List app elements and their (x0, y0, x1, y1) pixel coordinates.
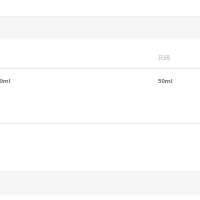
staticText: 50ml (158, 77, 173, 85)
staticText: 尺码 (158, 54, 170, 62)
button[interactable]: 50ml (0, 69, 200, 123)
button[interactable]: 尺码 (0, 39, 200, 68)
staticText: 50ml (0, 77, 11, 85)
